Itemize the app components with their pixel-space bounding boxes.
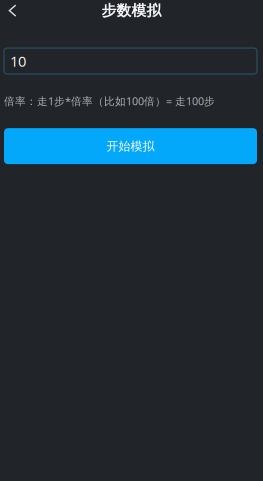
staticText: 步数模拟 bbox=[101, 1, 161, 19]
staticText: 10 bbox=[10, 51, 26, 71]
button[interactable]: 10 bbox=[4, 48, 257, 74]
button[interactable]: 开始模拟 bbox=[4, 128, 257, 164]
staticText: 倍率：走1步*倍率（比如100倍）= 走100步 bbox=[4, 94, 215, 108]
button[interactable]: Back bbox=[0, 0, 26, 20]
staticText: 开始模拟 bbox=[106, 139, 154, 153]
